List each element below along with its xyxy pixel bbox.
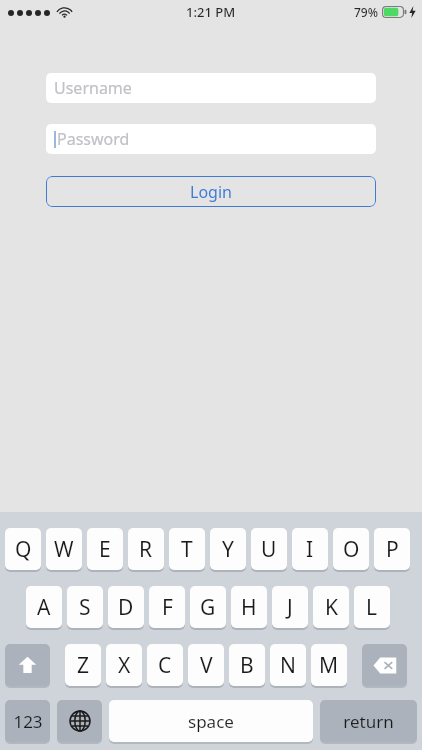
button[interactable]: V (188, 644, 224, 688)
button[interactable]: T (169, 528, 205, 572)
button[interactable]: Username (46, 73, 376, 103)
staticText: G (200, 593, 216, 622)
button[interactable]: A (26, 586, 62, 630)
staticText: L (366, 593, 378, 622)
staticText: A (37, 593, 51, 622)
button[interactable]: Change keyboard language (57, 700, 102, 744)
button[interactable]: O (333, 528, 369, 572)
staticText: H (241, 593, 257, 622)
staticText: J (287, 593, 293, 622)
button[interactable]: H (231, 586, 267, 630)
button[interactable]: C (147, 644, 183, 688)
button[interactable]: Y (210, 528, 246, 572)
button[interactable]: Z (65, 644, 101, 688)
button[interactable]: U (251, 528, 287, 572)
button[interactable]: space (109, 700, 313, 744)
button[interactable]: Login (46, 176, 376, 207)
staticText: P (386, 535, 399, 564)
staticText: Z (77, 651, 90, 680)
staticText: W (54, 535, 74, 564)
staticText: I (306, 535, 314, 564)
staticText: 1:21 PM (186, 3, 236, 21)
staticText: D (118, 593, 134, 622)
button[interactable]: B (229, 644, 265, 688)
staticText: B (240, 651, 254, 680)
button[interactable]: D (108, 586, 144, 630)
button[interactable]: E (87, 528, 123, 572)
button[interactable]: Shift (5, 644, 50, 688)
staticText: 123 (13, 710, 43, 733)
staticText: S (79, 593, 91, 622)
staticText: R (139, 535, 153, 564)
staticText: return (343, 710, 394, 733)
button[interactable]: Q (5, 528, 41, 572)
staticText: C (158, 651, 172, 680)
staticText: M (319, 651, 339, 680)
button[interactable]: I (292, 528, 328, 572)
button[interactable]: W (46, 528, 82, 572)
button[interactable]: L (354, 586, 390, 630)
button[interactable]: K (313, 586, 349, 630)
staticText: O (343, 535, 360, 564)
staticText: Login (190, 181, 232, 203)
staticText: X (118, 651, 131, 680)
button[interactable]: Backspace (362, 644, 407, 688)
staticText: space (188, 710, 234, 733)
button[interactable]: F (149, 586, 185, 630)
button[interactable]: N (270, 644, 306, 688)
button[interactable]: P (374, 528, 410, 572)
staticText: Username (54, 77, 132, 99)
button[interactable]: Password (46, 124, 376, 154)
staticText: T (181, 535, 193, 564)
button[interactable]: S (67, 586, 103, 630)
staticText: K (325, 593, 338, 622)
button[interactable]: 123 (5, 700, 50, 744)
staticText: F (162, 593, 173, 622)
staticText: E (99, 535, 111, 564)
button[interactable]: J (272, 586, 308, 630)
button[interactable]: G (190, 586, 226, 630)
staticText: Y (222, 535, 234, 564)
button[interactable]: X (106, 644, 142, 688)
staticText: N (280, 651, 296, 680)
staticText: 79% (354, 4, 378, 20)
staticText: Password (57, 128, 130, 150)
button[interactable]: return (320, 700, 417, 744)
button[interactable]: R (128, 528, 164, 572)
staticText: U (261, 535, 277, 564)
button[interactable]: M (311, 644, 347, 688)
staticText: V (200, 651, 213, 680)
staticText: Q (15, 535, 32, 564)
